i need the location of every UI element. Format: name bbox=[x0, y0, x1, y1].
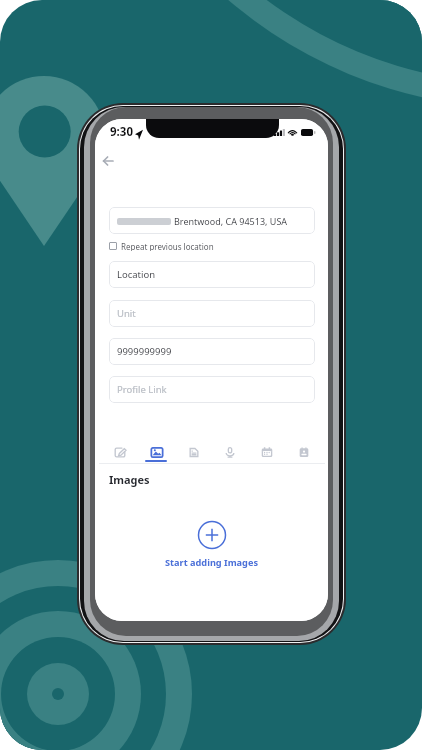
button[interactable]: Brentwood, CA 94513, USA bbox=[109, 207, 315, 234]
staticText: Brentwood, CA 94513, USA bbox=[174, 215, 288, 227]
button[interactable]: Back bbox=[95, 148, 121, 174]
button[interactable]: Images bbox=[147, 441, 167, 463]
staticText: Images bbox=[109, 472, 150, 487]
staticText: 9999999999 bbox=[117, 345, 172, 358]
button[interactable]: Calendar bbox=[257, 441, 277, 463]
staticText: Repeat previous location bbox=[121, 241, 214, 251]
button[interactable]: Documents bbox=[184, 441, 204, 463]
button[interactable]: Start adding Images bbox=[99, 520, 325, 569]
staticText: Start adding Images bbox=[165, 556, 259, 569]
button[interactable]: Audio bbox=[220, 441, 240, 463]
staticText: Unit bbox=[117, 307, 136, 320]
button[interactable]: Contacts bbox=[294, 441, 314, 463]
button[interactable]: Unit bbox=[109, 300, 315, 327]
button[interactable]: Location bbox=[109, 261, 315, 288]
button[interactable]: 9999999999 bbox=[109, 338, 315, 365]
staticText: 9:30 bbox=[110, 124, 133, 140]
button[interactable]: Profile Link bbox=[109, 376, 315, 403]
staticText: Profile Link bbox=[117, 383, 167, 396]
button[interactable]: Notes bbox=[110, 441, 130, 463]
staticText: Location bbox=[117, 268, 156, 281]
button[interactable]: Repeat previous location bbox=[109, 241, 214, 251]
